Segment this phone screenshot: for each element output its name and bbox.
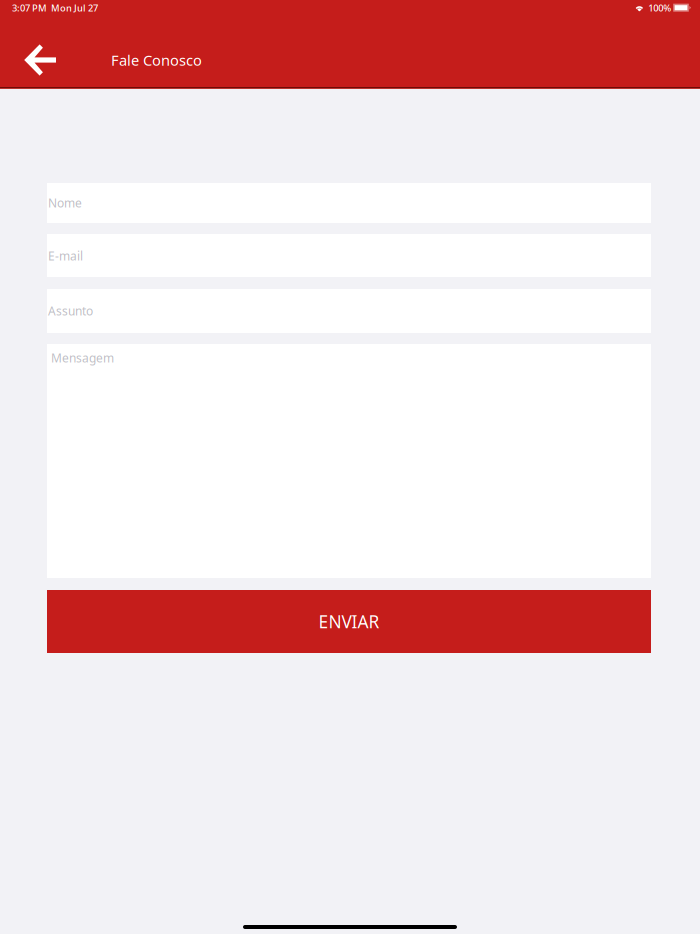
button[interactable]: E-mail	[47, 234, 651, 277]
staticText: Assunto	[48, 303, 93, 319]
staticText: ENVIAR	[318, 610, 379, 633]
staticText: Mon Jul 27	[51, 2, 98, 14]
button[interactable]: ENVIAR	[47, 590, 651, 653]
staticText: Mensagem	[51, 350, 114, 366]
button[interactable]: Nome	[47, 183, 651, 223]
staticText: Nome	[48, 195, 82, 211]
staticText: E-mail	[48, 248, 83, 264]
staticText: Fale Conosco	[111, 50, 202, 70]
staticText: 100%	[648, 2, 671, 14]
button[interactable]: Assunto	[47, 289, 651, 333]
staticText: 3:07 PM	[12, 2, 47, 14]
button[interactable]: Back	[16, 37, 64, 83]
